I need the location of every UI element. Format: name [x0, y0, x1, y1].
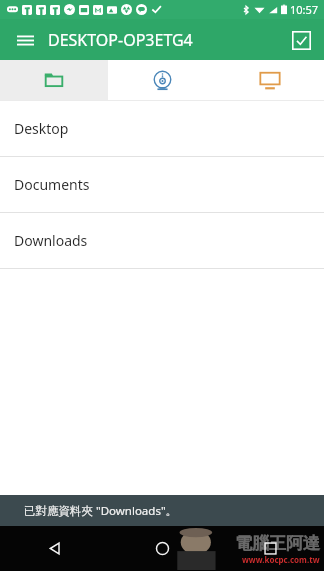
button[interactable]: Downloads: [0, 213, 324, 269]
staticText: Downloads: [14, 231, 88, 250]
button[interactable]: Desktop: [0, 101, 324, 157]
button[interactable]: 已對應資料夾 "Downloads"。: [0, 495, 324, 526]
button[interactable]: Folders tab: [0, 60, 108, 100]
button[interactable]: Documents: [0, 157, 324, 213]
button[interactable]: Recent apps: [216, 526, 324, 571]
staticText: DESKTOP-OP3ETG4: [48, 29, 193, 51]
staticText: 電腦王阿達: [235, 533, 320, 554]
staticText: Desktop: [14, 119, 69, 138]
staticText: 10:57: [290, 2, 319, 17]
button[interactable]: Back: [0, 526, 108, 571]
staticText: 已對應資料夾 "Downloads"。: [24, 503, 178, 519]
button[interactable]: Select all: [284, 23, 318, 57]
button[interactable]: Home: [108, 526, 216, 571]
staticText: www.kocpc.com.tw: [242, 554, 320, 565]
button[interactable]: Webcam tab: [108, 60, 216, 100]
staticText: Documents: [14, 175, 90, 194]
button[interactable]: Screen tab: [216, 60, 324, 100]
button[interactable]: Open navigation menu: [8, 23, 42, 57]
